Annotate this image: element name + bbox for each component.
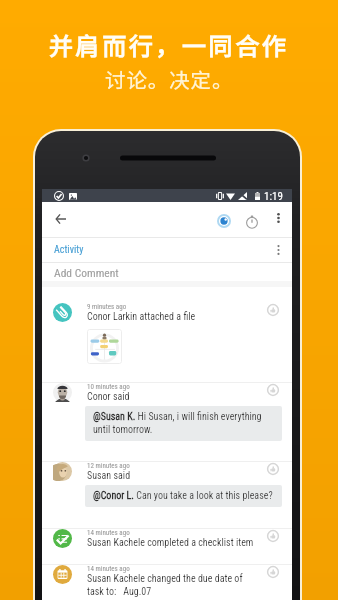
button[interactable]: 14 minutes ago: [42, 565, 292, 600]
button[interactable]: Watching: [212, 209, 236, 233]
button[interactable]: 14 minutes ago: [42, 529, 292, 565]
button[interactable]: 9 minutes ago: [42, 303, 292, 383]
staticText: 14 minutes ago: [87, 565, 130, 573]
button[interactable]: Activity: [54, 244, 84, 256]
button[interactable]: Like: [267, 304, 279, 316]
staticText: 12 minutes ago: [87, 462, 130, 470]
button[interactable]: 12 minutes ago: [42, 462, 292, 529]
button[interactable]: Like: [267, 384, 279, 396]
button[interactable]: Filter: [268, 240, 288, 260]
button[interactable]: Back: [48, 207, 72, 231]
staticText: @Susan K. Hi Susan, i will finish everyt…: [93, 411, 274, 436]
staticText: Susan Kachele changed the due date of ta…: [87, 573, 260, 598]
button[interactable]: More options: [267, 207, 289, 229]
staticText: 10 minutes ago: [87, 383, 130, 391]
staticText: Add Comment: [54, 266, 119, 279]
staticText: 14 minutes ago: [87, 529, 130, 537]
staticText: 讨论。决定。: [105, 64, 234, 94]
staticText: Conor said: [87, 391, 130, 403]
staticText: 并肩而行，一同合作: [49, 27, 289, 62]
button[interactable]: Like: [267, 530, 279, 542]
staticText: 9 minutes ago: [87, 303, 127, 311]
staticText: @Conor L. Can you take a look at this pl…: [93, 490, 273, 502]
staticText: Susan Kachele completed a checklist item: [87, 537, 254, 549]
staticText: Conor Larkin attached a file: [87, 311, 196, 323]
button[interactable]: 10 minutes ago: [42, 383, 292, 462]
button[interactable]: Due date: [240, 209, 264, 233]
button[interactable]: Like: [267, 463, 279, 475]
staticText: Susan said: [87, 470, 131, 482]
button[interactable]: Like: [267, 566, 279, 578]
button[interactable]: Add Comment: [42, 263, 292, 281]
staticText: 1:19: [264, 190, 283, 203]
